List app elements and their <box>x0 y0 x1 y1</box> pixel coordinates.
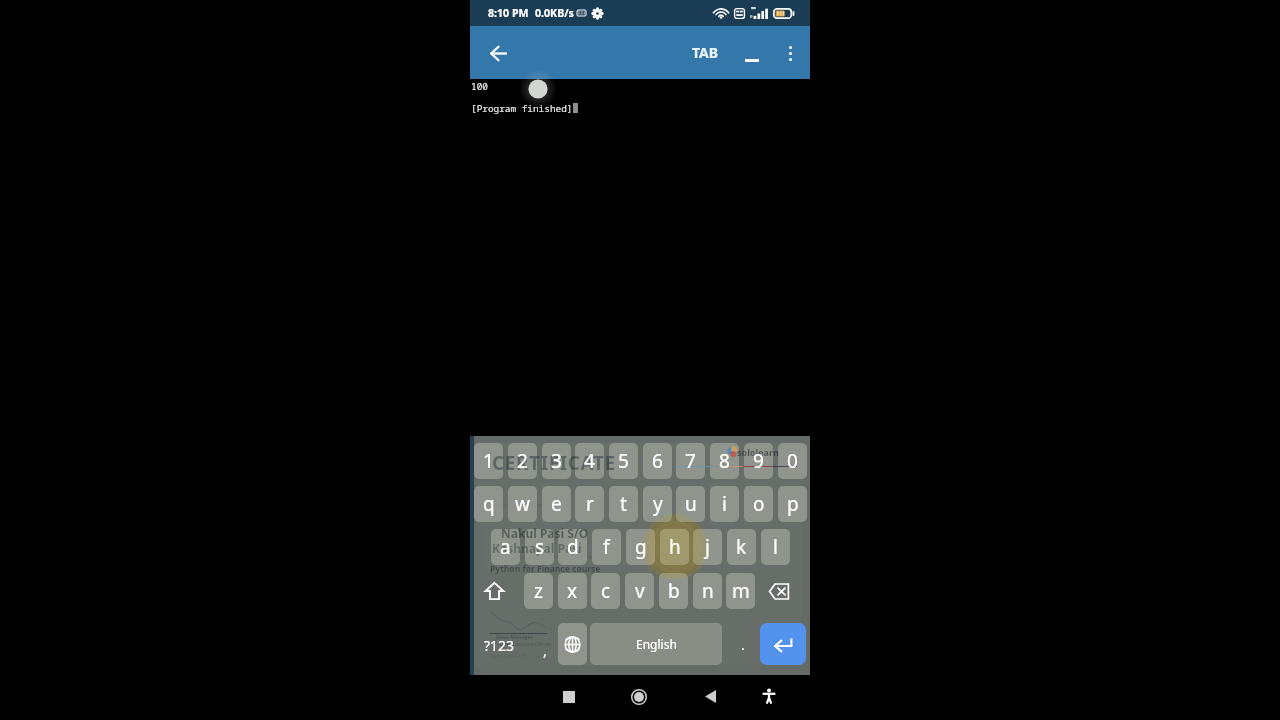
button[interactable]: ?123 <box>474 623 518 665</box>
staticText: t <box>620 491 627 517</box>
button[interactable]: f <box>592 529 621 565</box>
staticText: 8 <box>719 448 730 474</box>
staticText: q <box>483 491 495 517</box>
button[interactable]: u <box>676 486 705 522</box>
staticText: , <box>543 641 547 660</box>
staticText: s <box>535 534 545 560</box>
staticText: f <box>603 534 610 560</box>
button[interactable]: 6 <box>643 443 672 479</box>
button[interactable]: 3 <box>542 443 571 479</box>
staticText: i <box>722 491 727 517</box>
staticText: 9 <box>753 448 764 474</box>
button[interactable]: b <box>659 573 688 609</box>
staticText: b <box>668 578 680 604</box>
button[interactable]: Recents <box>547 675 591 720</box>
button[interactable]: l <box>761 529 790 565</box>
button[interactable]: More options <box>772 31 808 75</box>
staticText: x <box>567 578 578 604</box>
staticText: 3 <box>551 448 562 474</box>
staticText: e <box>551 491 562 517</box>
staticText: TAB <box>692 43 719 62</box>
button[interactable]: h <box>660 529 689 565</box>
staticText: k <box>736 534 747 560</box>
button[interactable]: k <box>727 529 756 565</box>
button[interactable]: p <box>778 486 807 522</box>
button[interactable]: o <box>744 486 773 522</box>
button[interactable]: Enter <box>760 623 806 665</box>
staticText: u <box>685 491 697 517</box>
staticText: 100 <box>471 80 488 93</box>
staticText: w <box>515 491 530 517</box>
button[interactable]: 1 <box>474 443 503 479</box>
staticText: h <box>669 534 681 560</box>
button[interactable]: , <box>522 623 556 665</box>
staticText: m <box>732 578 750 604</box>
button[interactable]: 4 <box>575 443 604 479</box>
staticText: Kashnapal Pasi <box>492 540 582 556</box>
button[interactable]: 7 <box>676 443 705 479</box>
button[interactable]: Minimize <box>732 31 772 75</box>
button[interactable]: Switch language <box>558 623 587 665</box>
staticText: a <box>500 534 511 560</box>
button[interactable]: z <box>524 573 553 609</box>
button[interactable]: r <box>575 486 604 522</box>
button[interactable]: e <box>542 486 571 522</box>
staticText: This is to certify that <box>496 502 544 509</box>
button[interactable]: Back <box>688 675 732 720</box>
staticText: Nakul Pasi S/O <box>501 525 589 541</box>
staticText: ?123 <box>484 636 515 655</box>
button[interactable]: g <box>626 529 655 565</box>
button[interactable]: a <box>491 529 520 565</box>
button[interactable]: x <box>558 573 587 609</box>
staticText: CERTIFICATE <box>492 450 616 476</box>
button[interactable]: 2 <box>508 443 537 479</box>
staticText: Chief Executive Officer <box>498 641 551 648</box>
staticText: p <box>787 491 799 517</box>
staticText: n <box>702 578 714 604</box>
staticText: y <box>653 491 663 517</box>
button[interactable]: Back <box>478 31 518 75</box>
button[interactable]: w <box>508 486 537 522</box>
staticText: Issued on 4 * 8_ 2 9 9 9 <box>490 653 545 660</box>
button[interactable]: 9 <box>744 443 773 479</box>
button[interactable]: Accessibility <box>747 675 791 720</box>
staticText: has successfully completed the Python fo… <box>490 554 597 560</box>
staticText: j <box>705 534 710 560</box>
staticText: 0.0KB/s <box>535 6 574 20</box>
button[interactable]: n <box>693 573 722 609</box>
staticText: r <box>586 491 594 517</box>
staticText: 1 <box>483 448 494 474</box>
staticText: 4 <box>584 448 595 474</box>
button[interactable]: i <box>710 486 739 522</box>
button[interactable]: 0 <box>778 443 807 479</box>
staticText: v <box>635 578 645 604</box>
button[interactable]: j <box>693 529 722 565</box>
button[interactable]: s <box>525 529 554 565</box>
button[interactable] <box>725 623 758 665</box>
staticText: Vlora Manager <box>496 634 533 641</box>
staticText: 8:10 PM <box>488 6 529 20</box>
button[interactable]: t <box>609 486 638 522</box>
button[interactable]: c <box>591 573 620 609</box>
staticText: sololearn <box>737 446 779 458</box>
button[interactable]: q <box>474 486 503 522</box>
button[interactable]: y <box>643 486 672 522</box>
staticText: Python for Finance course <box>490 563 601 575</box>
button[interactable]: Shift <box>480 573 509 609</box>
staticText: [Program finished] <box>471 102 573 115</box>
button[interactable]: TAB <box>688 37 723 68</box>
staticText: 2 <box>517 448 528 474</box>
staticText: o <box>753 491 765 517</box>
button[interactable]: 5 <box>609 443 638 479</box>
button[interactable]: Home <box>617 675 661 720</box>
staticText: d <box>567 534 579 560</box>
button[interactable]: d <box>558 529 587 565</box>
button[interactable]: m <box>726 573 755 609</box>
staticText: c <box>601 578 611 604</box>
button[interactable]: v <box>625 573 654 609</box>
staticText: g <box>635 534 647 560</box>
button[interactable]: English <box>590 623 722 665</box>
staticText: 5 <box>618 448 629 474</box>
button[interactable]: Backspace <box>764 573 793 609</box>
button[interactable]: 8 <box>710 443 739 479</box>
